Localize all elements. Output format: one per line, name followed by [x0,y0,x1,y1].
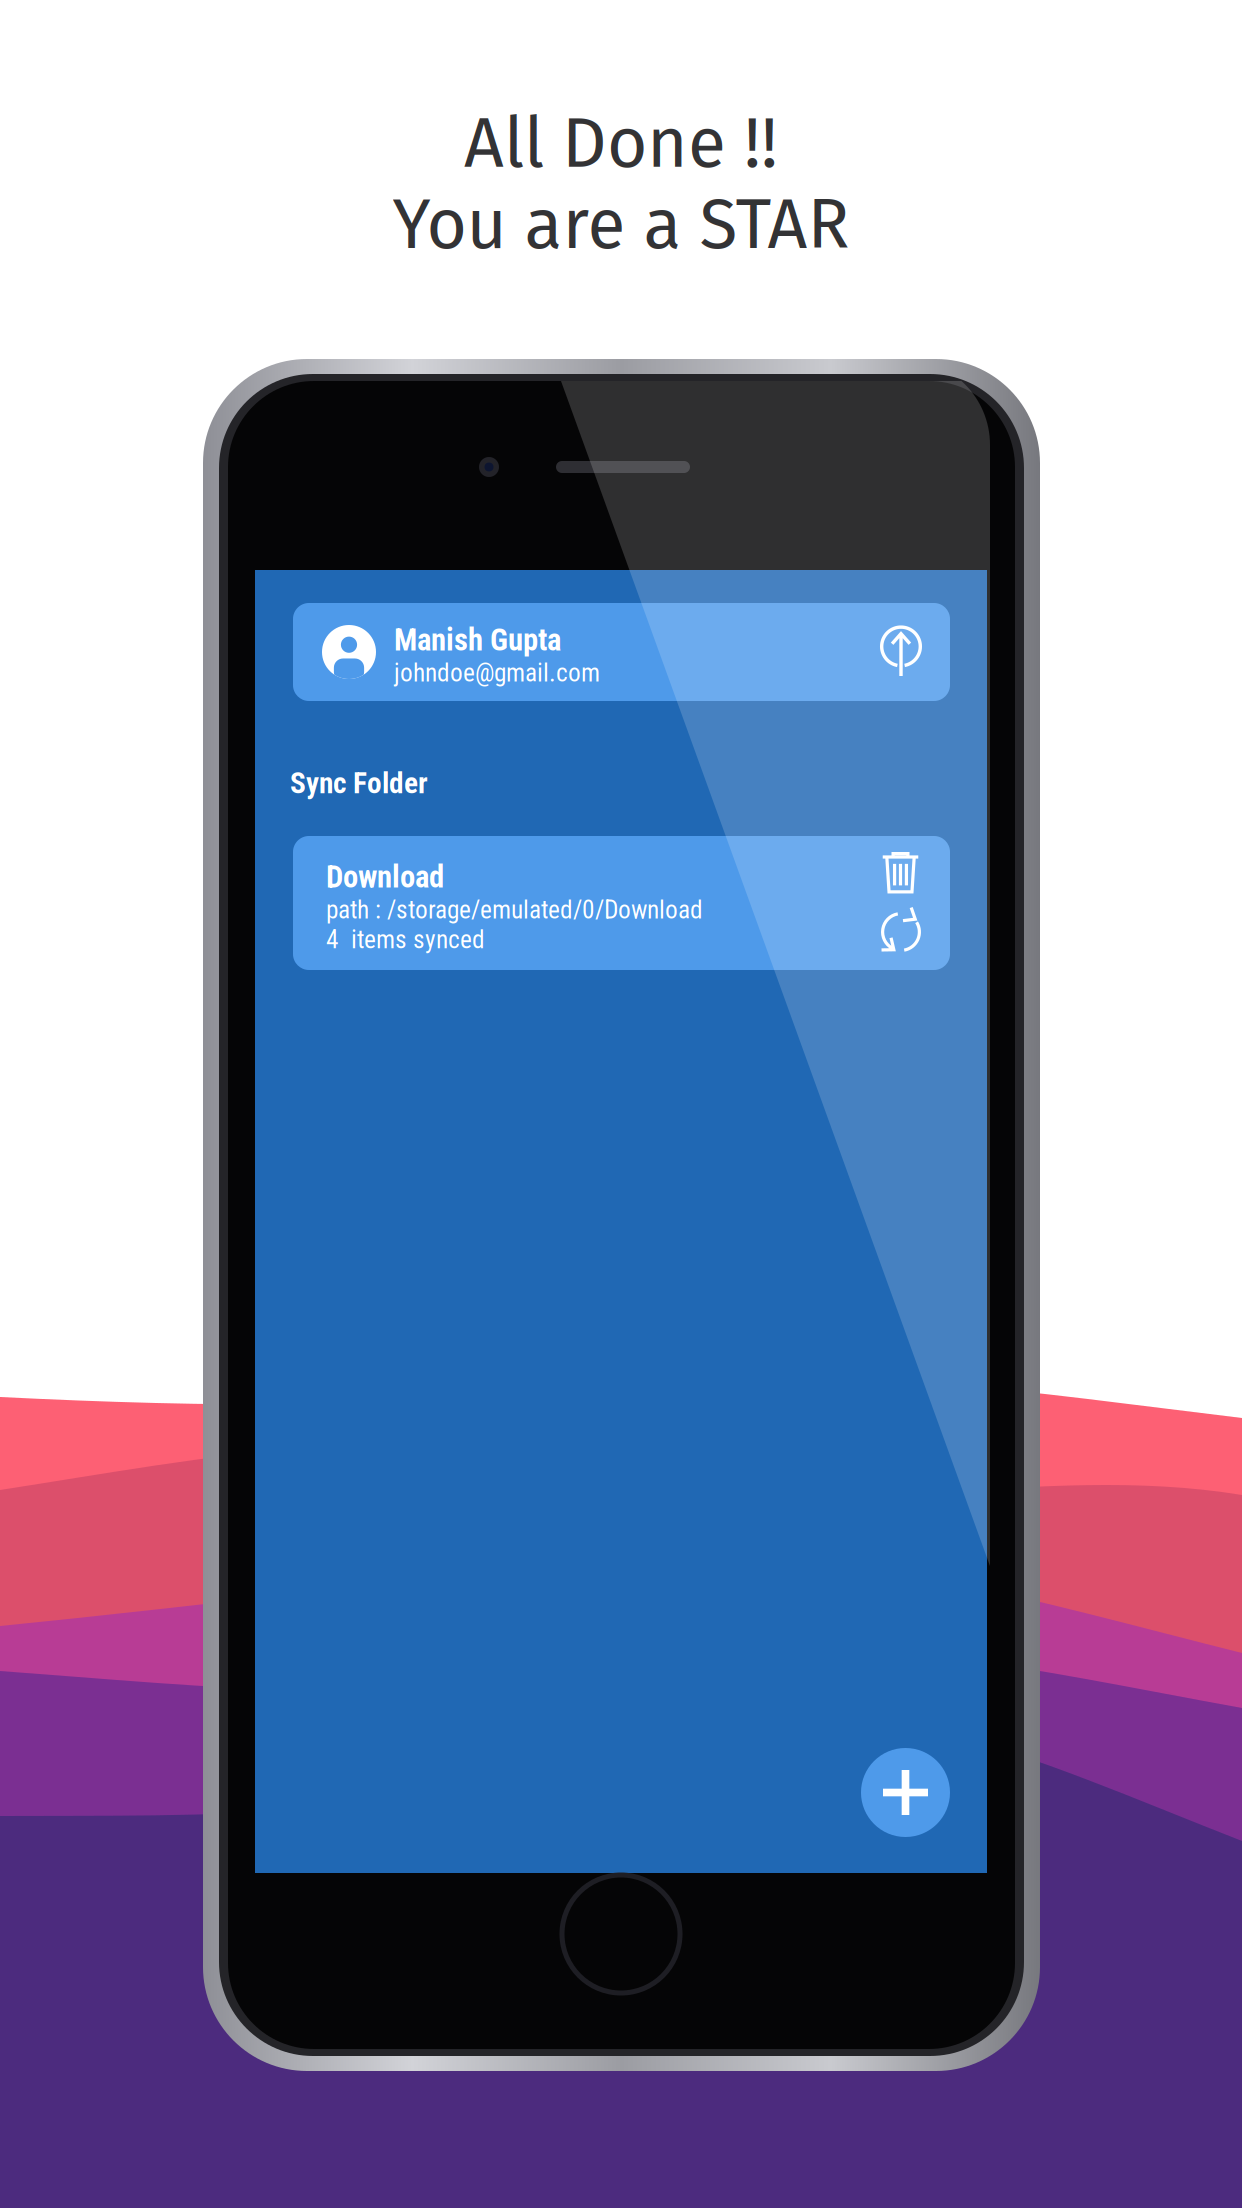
button[interactable]: Add folder [861,1748,950,1837]
button[interactable]: Delete folder [882,851,919,894]
button[interactable]: Sync now [878,907,924,957]
button[interactable]: Manish Gupta [293,603,950,701]
staticText: 4 items synced [326,925,485,954]
staticText: path : /storage/emulated/0/Download [326,895,703,925]
staticText: Sync Folder [290,766,428,800]
staticText: All Done !! [464,102,778,185]
staticText: Download [326,859,444,895]
staticText: Manish Gupta [394,622,561,658]
staticText: johndoe@gmail.com [394,658,600,688]
staticText: You are a STAR [392,183,849,266]
